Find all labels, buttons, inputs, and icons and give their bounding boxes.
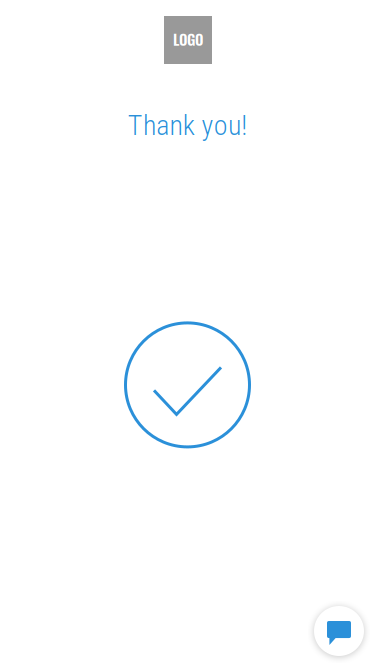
- button[interactable]: Chat with us: [314, 606, 364, 656]
- staticText: Thank you!: [128, 109, 247, 142]
- staticText: LOGO: [173, 28, 203, 50]
